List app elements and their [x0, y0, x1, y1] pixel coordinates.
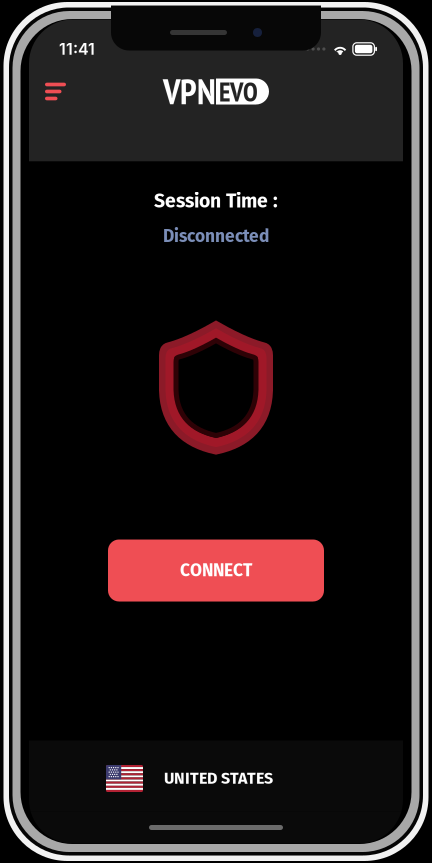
button[interactable]: UNITED STATES [29, 740, 403, 811]
button[interactable]: Menu [33, 72, 78, 110]
staticText: Disconnected [163, 226, 269, 246]
staticText: EVO [219, 74, 258, 109]
staticText: 11:41 [59, 39, 95, 59]
staticText: CONNECT [180, 560, 252, 581]
staticText: VPN [163, 69, 216, 114]
button[interactable]: CONNECT [108, 539, 324, 601]
staticText: Session Time : [154, 189, 278, 213]
staticText: UNITED STATES [164, 769, 273, 788]
